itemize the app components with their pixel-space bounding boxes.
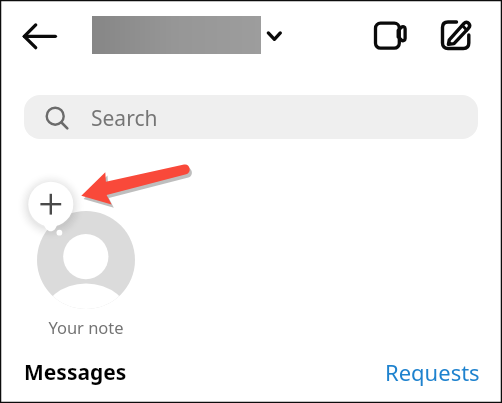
button[interactable]: Search	[24, 95, 478, 139]
button[interactable]: Requests	[385, 357, 480, 387]
button[interactable]: Your note	[37, 211, 135, 309]
button[interactable]: Add a note	[20, 173, 86, 243]
staticText: Search	[91, 104, 158, 133]
button[interactable]: Messages	[24, 358, 127, 387]
button[interactable]: Video call	[370, 17, 410, 53]
staticText: Your note	[37, 316, 135, 338]
button[interactable]: Show options	[262, 22, 286, 48]
button[interactable]: New message	[438, 17, 476, 53]
button[interactable]: Back	[18, 19, 62, 54]
